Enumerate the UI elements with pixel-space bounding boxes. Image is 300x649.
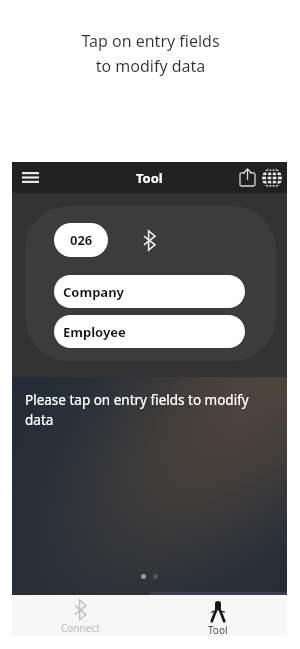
staticText: Connect [61,621,100,635]
button[interactable]: Employee [54,315,245,348]
staticText: Employee [63,323,126,341]
button[interactable]: Menu [18,165,43,190]
button[interactable]: Company [54,275,245,308]
button[interactable]: Bluetooth [138,229,160,251]
staticText: Tap on entry fields to modify data [81,30,220,76]
staticText: Tool [136,169,163,187]
button[interactable]: 026 [54,223,108,257]
button[interactable]: Connect [12,595,149,636]
staticText: 026 [70,231,93,249]
staticText: Company [63,283,125,301]
button[interactable]: Share [236,166,259,189]
button[interactable]: Language [260,166,283,189]
button[interactable]: Tool [149,595,287,636]
staticText: Please tap on entry fields to modify dat… [25,391,275,429]
staticText: Tool [208,623,228,636]
